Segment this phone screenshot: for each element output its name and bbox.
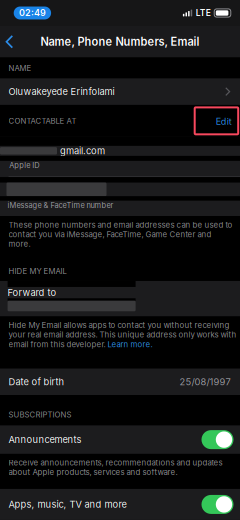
staticText: about Apple products, services and softw… [9, 467, 178, 477]
staticText: Forward to [8, 287, 57, 298]
button[interactable]: Forward to [0, 281, 240, 316]
staticText: HIDE MY EMAIL [9, 267, 67, 276]
staticText: Receive announcements, recommendations a… [9, 458, 223, 467]
staticText: iMessage & FaceTime number [8, 201, 114, 210]
button[interactable]: Back [0, 28, 13, 55]
staticText: NAME [9, 63, 32, 73]
staticText: 02:49 [19, 7, 46, 18]
staticText: CONTACTABLE AT [9, 116, 77, 126]
staticText: gmail.com [60, 145, 105, 156]
staticText: Hide My Email allows apps to contact you… [9, 320, 230, 330]
staticText: contact you via iMessage, FaceTime, Game… [9, 230, 212, 239]
staticText: more. [9, 239, 31, 249]
staticText: SUBSCRIPTIONS [9, 410, 72, 419]
staticText: email from this developer. [9, 339, 108, 349]
button[interactable]: Learn more. [108, 339, 153, 349]
staticText: Date of birth [9, 376, 65, 387]
staticText: Announcements [9, 434, 82, 445]
button[interactable]: Edit [195, 107, 238, 134]
staticText: Learn more. [108, 339, 153, 349]
button[interactable]: Oluwakeyede Erinfolami [0, 78, 240, 105]
button[interactable]: Apps, music, TV and more [201, 495, 233, 514]
staticText: LTE [196, 8, 211, 18]
staticText: Apple ID [9, 161, 39, 170]
staticText: Oluwakeyede Erinfolami [9, 86, 115, 97]
staticText: Apps, music, TV and more [9, 499, 127, 510]
staticText: These phone numbers and email addresses … [9, 220, 233, 230]
staticText: your real email address. This unique add… [9, 330, 237, 339]
staticText: 25/08/1997 [179, 376, 230, 387]
staticText: Edit [216, 116, 232, 127]
button[interactable]: Announcements [201, 430, 233, 449]
staticText: Name, Phone Numbers, Email [40, 35, 199, 48]
